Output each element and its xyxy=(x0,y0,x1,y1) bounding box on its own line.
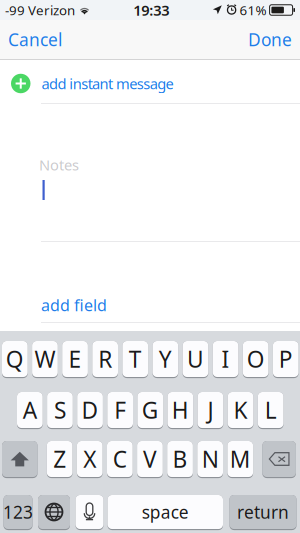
button[interactable]: Delete xyxy=(262,441,296,478)
staticText: Y xyxy=(159,344,172,374)
staticText: return xyxy=(237,500,289,523)
button[interactable]: X xyxy=(77,441,103,478)
button[interactable]: J xyxy=(198,392,223,429)
staticText: O xyxy=(247,344,265,374)
button[interactable]: U xyxy=(183,341,208,378)
staticText: T xyxy=(129,344,142,374)
staticText: 61% xyxy=(240,1,267,19)
staticText: N xyxy=(202,444,219,474)
staticText: add field xyxy=(41,294,107,316)
staticText: E xyxy=(68,344,81,374)
button[interactable]: W xyxy=(32,341,58,378)
staticText: L xyxy=(265,395,277,425)
button[interactable]: D xyxy=(77,392,103,429)
button[interactable]: S xyxy=(47,392,73,429)
button[interactable]: Next keyboard xyxy=(38,495,70,530)
staticText: space xyxy=(142,500,189,523)
staticText: -99 Verizon xyxy=(5,1,75,19)
button[interactable]: Z xyxy=(47,441,72,478)
staticText: M xyxy=(230,444,251,474)
staticText: 19:33 xyxy=(133,0,169,20)
staticText: P xyxy=(279,344,293,374)
button[interactable]: Done xyxy=(247,22,293,56)
staticText: add instant message xyxy=(41,74,174,93)
staticText: S xyxy=(54,395,66,425)
button[interactable]: H xyxy=(167,392,193,429)
button[interactable]: M xyxy=(227,441,253,478)
button[interactable]: space xyxy=(107,495,223,530)
staticText: F xyxy=(114,395,126,425)
button[interactable]: N xyxy=(197,441,223,478)
button[interactable]: Cancel xyxy=(7,22,63,56)
staticText: C xyxy=(113,444,127,474)
button[interactable]: I xyxy=(213,341,238,378)
staticText: W xyxy=(34,344,55,374)
button[interactable]: A xyxy=(17,392,43,429)
button[interactable]: P xyxy=(273,341,299,378)
button[interactable]: add field xyxy=(0,285,300,325)
button[interactable]: Q xyxy=(2,341,28,378)
button[interactable]: C xyxy=(107,441,133,478)
staticText: H xyxy=(172,395,189,425)
button[interactable]: O xyxy=(243,341,268,378)
button[interactable]: L xyxy=(258,392,283,429)
staticText: Notes xyxy=(39,155,79,174)
staticText: A xyxy=(23,395,37,425)
button[interactable]: F xyxy=(107,392,133,429)
staticText: B xyxy=(172,444,187,474)
button[interactable]: 123 xyxy=(3,495,32,530)
staticText: I xyxy=(221,344,229,374)
staticText: Done xyxy=(248,28,292,51)
staticText: Cancel xyxy=(8,28,62,51)
button[interactable]: K xyxy=(228,392,253,429)
button[interactable]: Y xyxy=(152,341,178,378)
staticText: K xyxy=(233,395,247,425)
staticText: Q xyxy=(6,344,24,374)
staticText: V xyxy=(143,444,157,474)
button[interactable]: T xyxy=(122,341,148,378)
staticText: G xyxy=(142,395,159,425)
staticText: R xyxy=(98,344,112,374)
staticText: Z xyxy=(53,444,66,474)
button[interactable]: V xyxy=(137,441,163,478)
button[interactable]: G xyxy=(137,392,163,429)
button[interactable]: Dictation xyxy=(75,495,103,530)
staticText: 123 xyxy=(3,500,33,523)
button[interactable]: R xyxy=(92,341,118,378)
staticText: D xyxy=(81,395,98,425)
staticText: U xyxy=(187,344,204,374)
button[interactable]: return xyxy=(229,495,296,530)
button[interactable]: E xyxy=(62,341,88,378)
button[interactable]: B xyxy=(167,441,193,478)
button[interactable]: Shift xyxy=(2,441,37,478)
staticText: J xyxy=(207,395,213,425)
staticText: X xyxy=(83,444,96,474)
button[interactable]: add instant message xyxy=(0,60,300,107)
